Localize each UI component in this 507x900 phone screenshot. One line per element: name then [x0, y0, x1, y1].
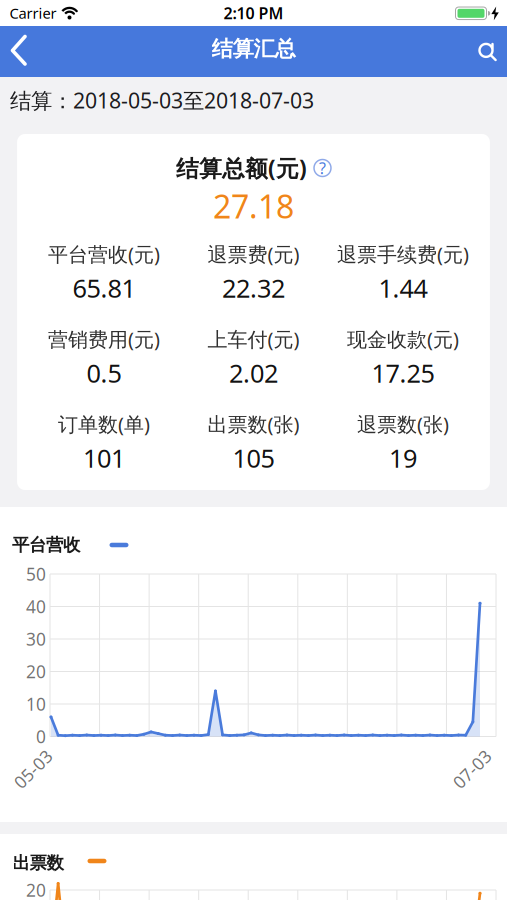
staticText: 现金收款(元)	[347, 326, 459, 352]
staticText: 30	[26, 627, 46, 650]
staticText: 101	[83, 441, 125, 475]
staticText: 订单数(单)	[58, 411, 150, 437]
staticText: 65.81	[72, 271, 135, 305]
staticText: 07-03	[449, 757, 495, 780]
staticText: 出票数	[12, 852, 63, 874]
staticText: 40	[26, 595, 46, 618]
staticText: ?	[319, 157, 326, 179]
staticText: 退票数(张)	[357, 411, 449, 437]
staticText: Carrier	[9, 3, 56, 23]
staticText: 营销费用(元)	[48, 326, 160, 352]
staticText: 20	[26, 660, 46, 683]
staticText: 结算：2018-05-03至2018-07-03	[10, 86, 314, 114]
staticText: 27.18	[213, 185, 294, 227]
staticText: 2.02	[229, 356, 278, 390]
staticText: 17.25	[372, 356, 435, 390]
staticText: 50	[26, 562, 46, 585]
staticText: 平台营收	[12, 534, 80, 556]
staticText: 22.32	[222, 271, 285, 305]
staticText: 10	[26, 692, 46, 715]
staticText: 105	[232, 441, 274, 475]
staticText: 结算总额(元)	[176, 153, 307, 183]
staticText: 上车付(元)	[207, 326, 299, 352]
staticText: 0	[36, 725, 46, 748]
staticText: 退票手续费(元)	[337, 241, 469, 267]
staticText: 19	[389, 441, 417, 475]
staticText: 退票费(元)	[207, 241, 299, 267]
staticText: 结算汇总	[211, 36, 295, 62]
staticText: 平台营收(元)	[48, 241, 160, 267]
staticText: 0.5	[86, 356, 121, 390]
staticText: 2:10 PM	[223, 2, 283, 24]
staticText: 05-03	[10, 757, 56, 780]
staticText: 出票数(张)	[207, 411, 299, 437]
staticText: 20	[26, 878, 46, 900]
staticText: 1.44	[379, 271, 428, 305]
